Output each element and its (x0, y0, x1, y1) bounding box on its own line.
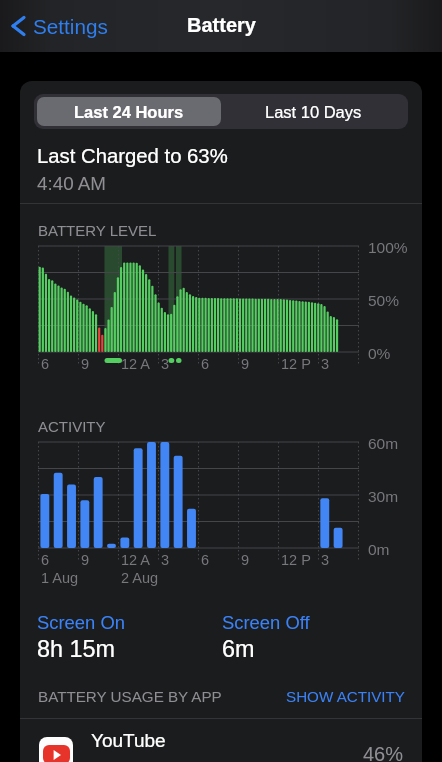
staticText: BATTERY LEVEL (38, 222, 157, 239)
staticText: Last Charged to 63% (37, 145, 228, 168)
staticText: 9 (81, 552, 90, 568)
staticText: Battery (187, 14, 256, 36)
staticText: 0m (368, 541, 390, 558)
staticText: 46% (363, 743, 404, 762)
staticText: 12 P (281, 552, 311, 568)
staticText: Screen On (37, 612, 125, 633)
staticText: 1 Aug (41, 570, 79, 586)
staticText: 6m (222, 636, 255, 662)
button[interactable]: SHOW ACTIVITY (286, 688, 405, 705)
staticText: 9 (241, 356, 250, 372)
staticText: 2 Aug (121, 570, 159, 586)
staticText: 3 (321, 356, 330, 372)
staticText: 12 A (121, 552, 151, 568)
other: YouTube (39, 737, 73, 762)
staticText: Last 10 Days (265, 103, 362, 121)
staticText: 6 (201, 356, 210, 372)
staticText: 30m (368, 488, 399, 505)
staticText: 3 (161, 552, 170, 568)
staticText: 9 (81, 356, 90, 372)
staticText: 0% (368, 345, 391, 362)
staticText: 3 (161, 356, 170, 372)
staticText: SHOW ACTIVITY (286, 688, 405, 705)
staticText: 60m (368, 435, 399, 452)
staticText: 6 (41, 356, 50, 372)
staticText: Settings (33, 15, 108, 38)
staticText: 12 A (121, 356, 151, 372)
button[interactable]: YouTube (20, 719, 422, 762)
staticText: BATTERY USAGE BY APP (38, 688, 222, 705)
staticText: 8h 15m (37, 636, 116, 662)
button[interactable]: Settings (12, 0, 108, 52)
staticText: 6 (201, 552, 210, 568)
staticText: 50% (368, 292, 400, 309)
staticText: 100% (368, 239, 408, 256)
staticText: 4:40 AM (37, 173, 106, 194)
staticText: 3 (321, 552, 330, 568)
staticText: Screen Off (222, 612, 310, 633)
staticText: ACTIVITY (38, 418, 106, 435)
staticText: 12 P (281, 356, 311, 372)
staticText: YouTube (91, 730, 166, 751)
staticText: Last 24 Hours (74, 103, 184, 121)
button[interactable]: Last 24 Hours (37, 97, 221, 126)
staticText: 9 (241, 552, 250, 568)
staticText: 6 (41, 552, 50, 568)
button[interactable]: Last 10 Days (221, 97, 405, 126)
